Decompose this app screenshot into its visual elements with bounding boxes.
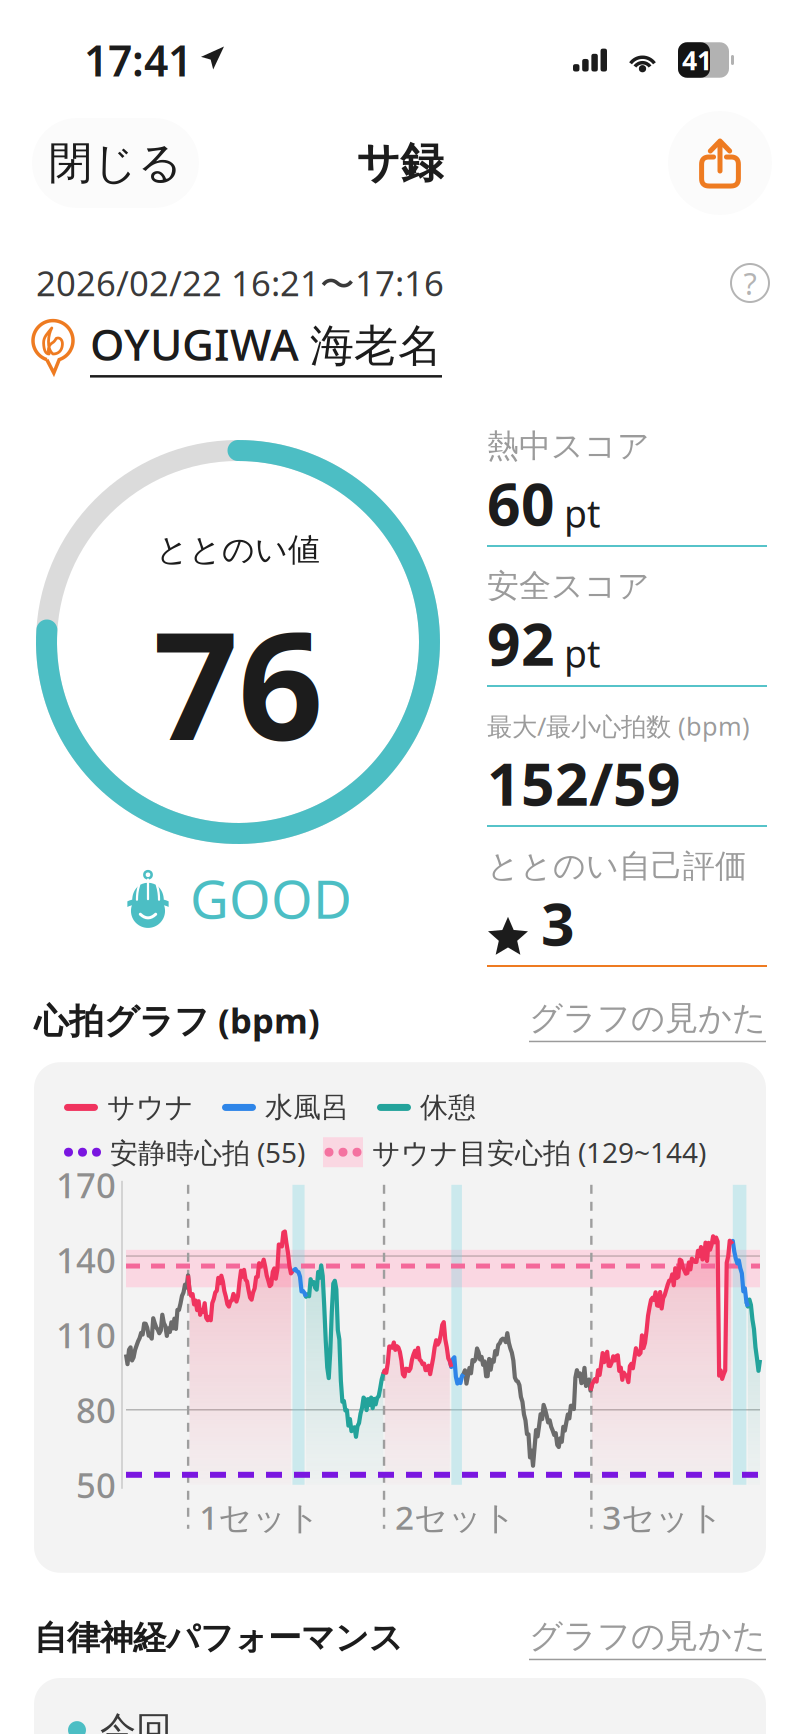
staticText: ?: [743, 263, 756, 303]
staticText: 17:41: [84, 32, 192, 88]
staticText: 閉じる: [48, 136, 182, 190]
staticText: 1セット: [199, 1495, 320, 1539]
staticText: 41: [682, 42, 712, 78]
staticText: 熱中スコア: [487, 426, 650, 466]
staticText: 170: [56, 1162, 116, 1208]
staticText: OYUGIWA 海老名: [90, 314, 442, 373]
button[interactable]: グラフの見かた: [529, 998, 766, 1042]
staticText: 2026/02/22 16:21〜17:16: [36, 260, 444, 306]
staticText: 自律神経パフォーマンス: [34, 1617, 403, 1658]
staticText: 2セット: [395, 1495, 516, 1539]
staticText: pt: [564, 628, 600, 678]
staticText: 心拍グラフ (bpm): [34, 997, 320, 1043]
staticText: 92: [487, 604, 555, 682]
staticText: 110: [56, 1312, 116, 1358]
staticText: ととのい値: [156, 530, 320, 569]
staticText: 水風呂: [265, 1090, 349, 1125]
staticText: 140: [56, 1237, 116, 1283]
button[interactable]: グラフの見かた: [529, 1616, 766, 1660]
staticText: グラフの見かた: [529, 1616, 766, 1657]
button[interactable]: ヘルプ: [730, 263, 770, 303]
staticText: サ録: [356, 137, 443, 189]
staticText: 今回: [100, 1708, 172, 1734]
staticText: 最大/最小心拍数 (bpm): [487, 709, 750, 743]
button[interactable]: 共有: [668, 111, 772, 215]
staticText: 50: [76, 1462, 116, 1508]
button[interactable]: OYUGIWA 海老名: [0, 318, 800, 374]
staticText: 3セット: [602, 1495, 723, 1539]
staticText: 3: [541, 884, 575, 962]
staticText: 休憩: [420, 1090, 476, 1125]
staticText: 60: [487, 464, 555, 542]
staticText: 152/59: [487, 744, 681, 822]
staticText: サウナ: [107, 1090, 194, 1125]
button[interactable]: 閉じる: [32, 118, 199, 208]
staticText: ととのい自己評価: [487, 846, 747, 886]
staticText: pt: [564, 488, 600, 538]
staticText: 80: [76, 1387, 116, 1433]
staticText: サウナ目安心拍 (129~144): [372, 1134, 706, 1171]
staticText: GOOD: [190, 863, 352, 933]
staticText: 安全スコア: [487, 566, 650, 606]
staticText: グラフの見かた: [529, 998, 766, 1039]
staticText: 76: [153, 583, 323, 782]
staticText: 安静時心拍 (55): [110, 1134, 305, 1171]
